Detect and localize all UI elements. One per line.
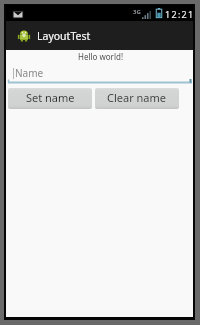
button[interactable]: Clear name — [95, 88, 179, 109]
staticText: 12:21 — [165, 8, 195, 20]
other: New mail — [13, 11, 23, 18]
staticText: Name — [15, 66, 44, 80]
staticText: Clear name — [107, 90, 167, 105]
staticText: 3G — [133, 8, 141, 16]
staticText: Hello world! — [7, 51, 194, 62]
button[interactable]: Name — [8, 65, 192, 84]
staticText: LayoutTest — [37, 29, 91, 43]
staticText: Set name — [26, 90, 75, 105]
button[interactable]: Set name — [8, 88, 92, 109]
